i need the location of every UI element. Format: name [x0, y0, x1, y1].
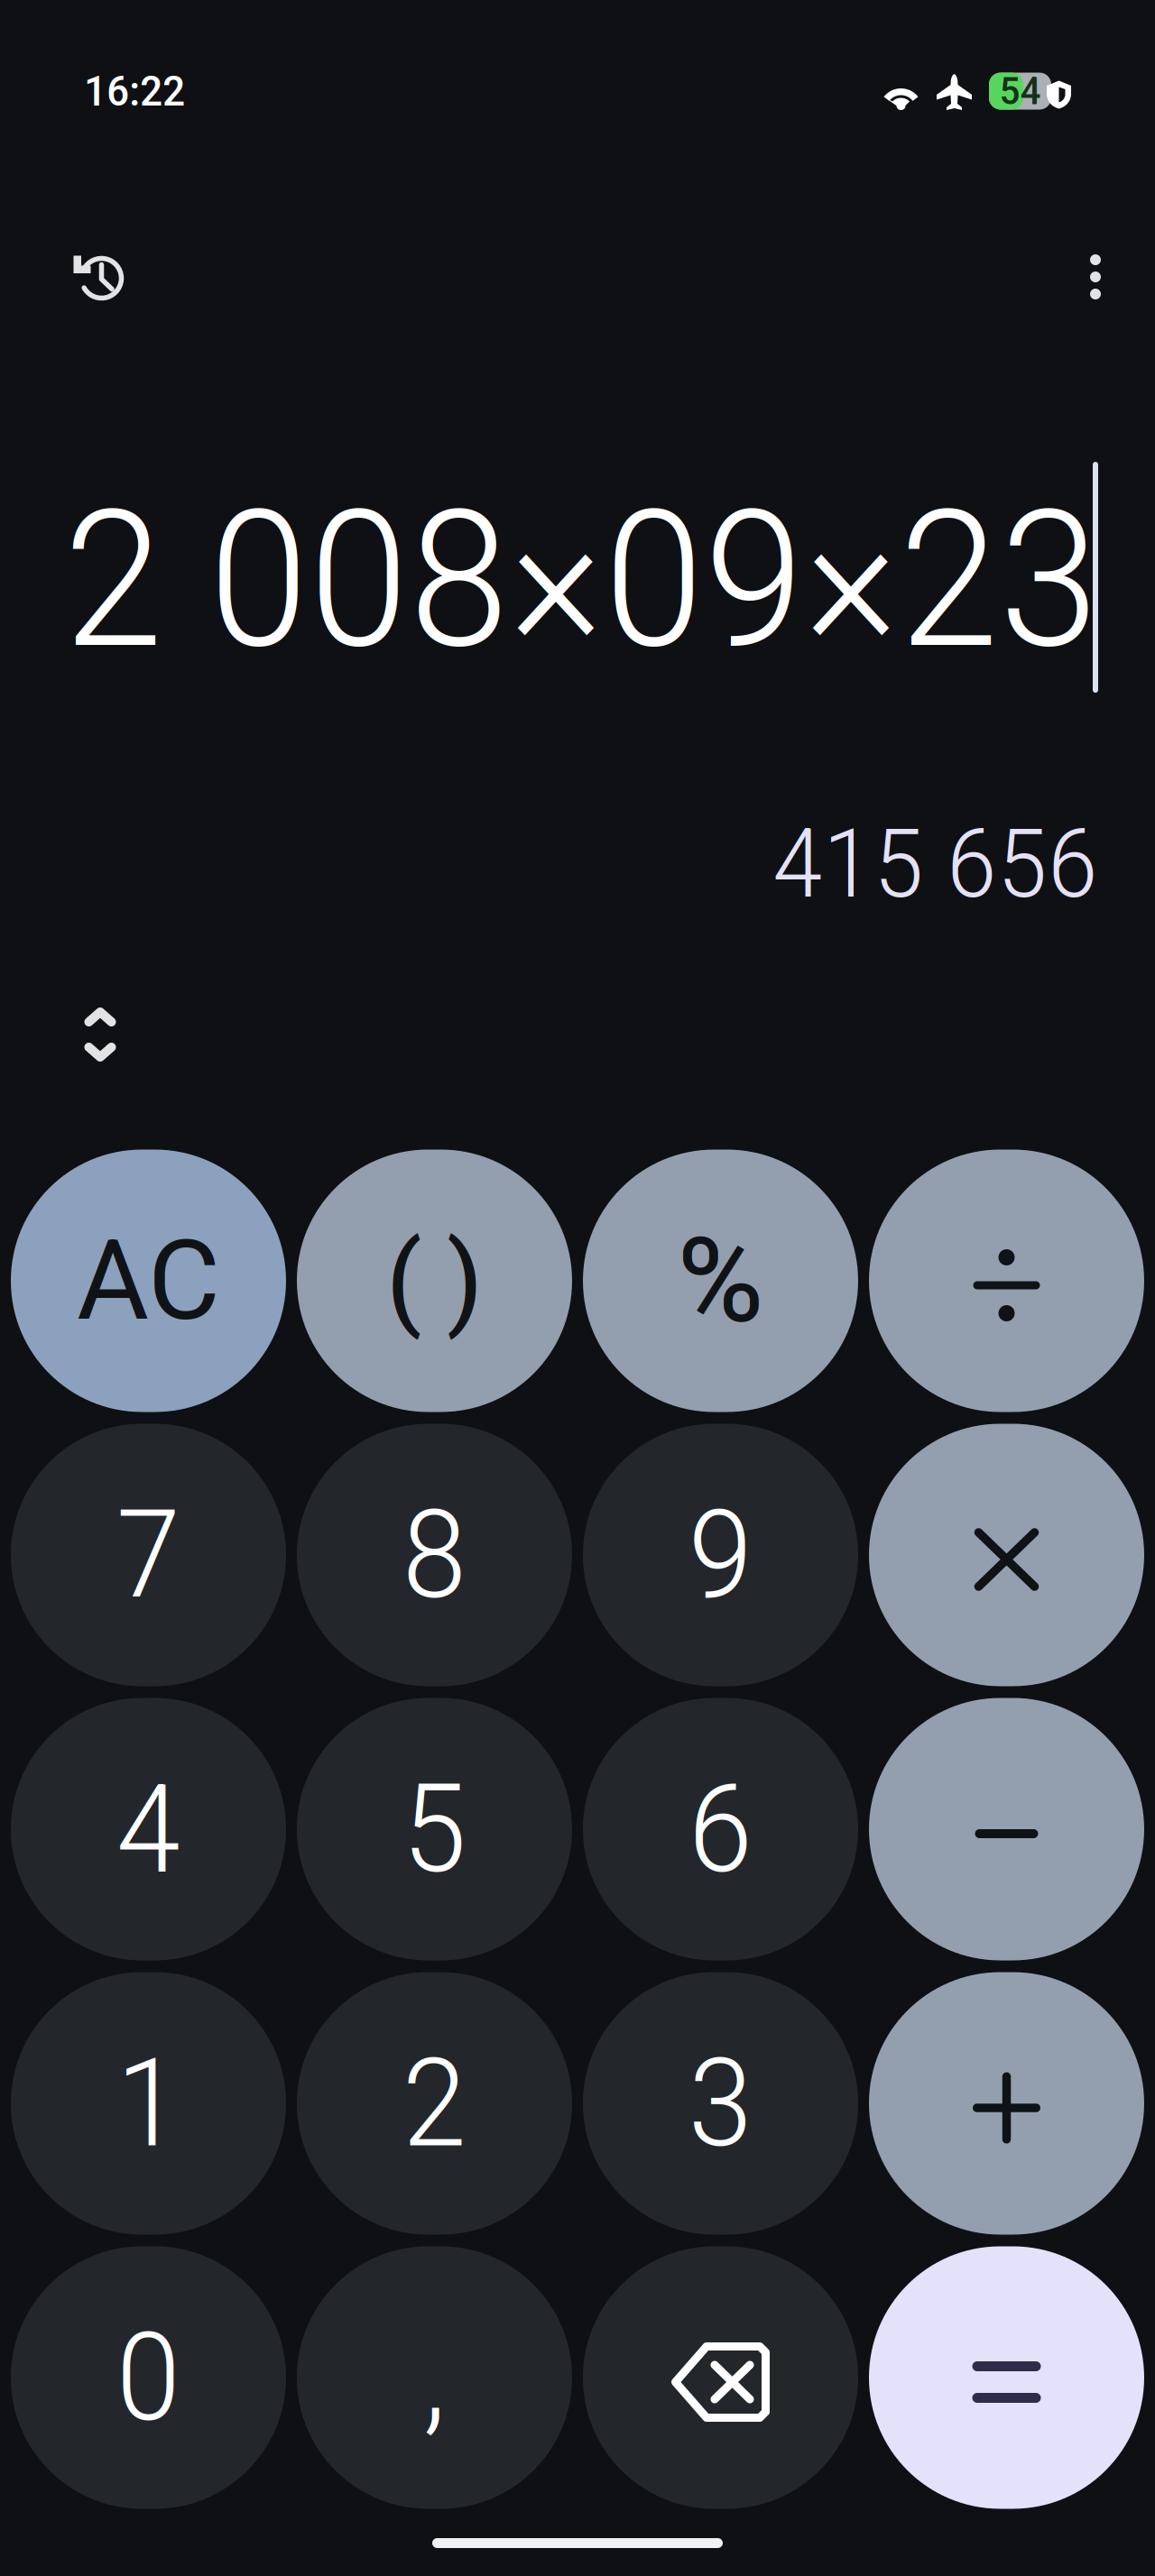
button[interactable]: 1: [5, 1966, 291, 2240]
button[interactable]: Backspace: [577, 2240, 864, 2515]
button[interactable]: 5: [291, 1692, 577, 1966]
staticText: AC: [77, 1216, 220, 1346]
button[interactable]: Expand: [51, 985, 150, 1084]
staticText: 1: [116, 2031, 181, 2175]
staticText: 415 656: [772, 808, 1098, 920]
staticText: %: [677, 1212, 764, 1350]
staticText: 2 008×09×23: [63, 469, 1099, 691]
staticText: 6: [688, 1757, 753, 1901]
button[interactable]: 6: [577, 1692, 864, 1966]
button[interactable]: History: [49, 227, 148, 327]
button[interactable]: Minus: [864, 1692, 1150, 1966]
staticText: 2: [402, 2031, 467, 2175]
staticText: 0: [116, 2306, 181, 2449]
staticText: 16:22: [84, 66, 185, 116]
button[interactable]: 3: [577, 1966, 864, 2240]
button[interactable]: 4: [5, 1692, 291, 1966]
button[interactable]: 0: [5, 2240, 291, 2515]
button[interactable]: 9: [577, 1418, 864, 1692]
button[interactable]: 2: [291, 1966, 577, 2240]
staticText: 54: [999, 69, 1041, 114]
staticText: 3: [688, 2031, 753, 2175]
staticText: ( ): [386, 1220, 483, 1341]
staticText: 5: [402, 1757, 467, 1901]
button[interactable]: ,: [291, 2240, 577, 2515]
staticText: 4: [116, 1757, 181, 1901]
button[interactable]: 8: [291, 1418, 577, 1692]
button[interactable]: %: [577, 1144, 864, 1418]
button[interactable]: 7: [5, 1418, 291, 1692]
staticText: 8: [402, 1483, 467, 1627]
button[interactable]: ( ): [291, 1144, 577, 1418]
button[interactable]: Equals: [864, 2240, 1150, 2515]
button[interactable]: Plus: [864, 1966, 1150, 2240]
button[interactable]: More options: [1046, 227, 1145, 327]
button[interactable]: Multiply: [864, 1418, 1150, 1692]
button[interactable]: Divide: [864, 1144, 1150, 1418]
staticText: 7: [116, 1483, 181, 1627]
staticText: 9: [688, 1483, 753, 1627]
button[interactable]: AC: [5, 1144, 291, 1418]
staticText: ,: [423, 2306, 446, 2449]
